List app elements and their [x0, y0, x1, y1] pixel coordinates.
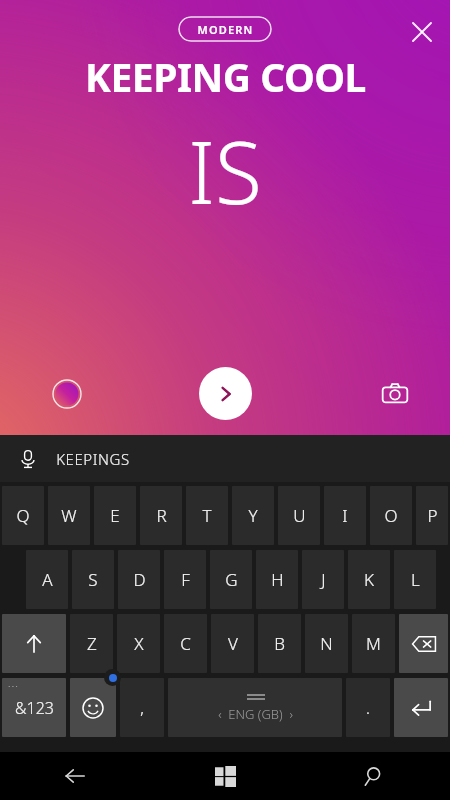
staticText: S: [88, 568, 98, 591]
button[interactable]: R: [140, 486, 182, 545]
button[interactable]: Close: [402, 12, 442, 52]
button[interactable]: Y: [232, 486, 274, 545]
staticText: H: [271, 568, 284, 591]
button[interactable]: Camera: [373, 372, 417, 416]
staticText: KEEPINGS: [56, 449, 130, 469]
button[interactable]: L: [394, 550, 436, 609]
button[interactable]: J: [302, 550, 344, 609]
button[interactable]: K: [348, 550, 390, 609]
staticText: · · ·: [8, 682, 18, 692]
staticText: U: [293, 504, 306, 527]
button[interactable]: MODERN: [178, 16, 272, 42]
staticText: G: [225, 568, 238, 591]
staticText: Z: [87, 632, 97, 655]
button[interactable]: ‹ ENG (GB) ›: [168, 678, 342, 737]
staticText: V: [228, 632, 238, 655]
staticText: B: [274, 632, 285, 655]
button[interactable]: Colour: [45, 372, 89, 416]
button[interactable]: N: [305, 614, 348, 673]
staticText: I: [342, 504, 348, 527]
button[interactable]: G: [210, 550, 252, 609]
button[interactable]: &123: [2, 678, 66, 737]
staticText: Q: [16, 504, 30, 527]
staticText: IS: [188, 112, 262, 229]
staticText: .: [366, 697, 370, 719]
button[interactable]: [70, 678, 116, 737]
button[interactable]: P: [416, 486, 448, 545]
staticText: K: [364, 568, 374, 591]
button[interactable]: [399, 614, 448, 673]
button[interactable]: H: [256, 550, 298, 609]
staticText: E: [110, 504, 120, 527]
staticText: Y: [248, 504, 258, 527]
staticText: ‹ ENG (GB) ›: [218, 705, 293, 723]
button[interactable]: F: [164, 550, 206, 609]
button[interactable]: O: [370, 486, 412, 545]
button[interactable]: Z: [70, 614, 113, 673]
button[interactable]: Start: [150, 752, 300, 800]
button[interactable]: Search: [300, 752, 450, 800]
staticText: P: [427, 504, 438, 527]
staticText: T: [202, 504, 212, 527]
staticText: ,: [140, 697, 144, 719]
button[interactable]: M: [352, 614, 395, 673]
button[interactable]: KEEPINGS: [56, 435, 130, 482]
button[interactable]: U: [278, 486, 320, 545]
button[interactable]: X: [117, 614, 160, 673]
staticText: X: [134, 632, 144, 655]
button[interactable]: Back: [0, 752, 150, 800]
button[interactable]: Q: [2, 486, 44, 545]
button[interactable]: D: [118, 550, 160, 609]
button[interactable]: T: [186, 486, 228, 545]
button[interactable]: B: [258, 614, 301, 673]
button[interactable]: A: [26, 550, 68, 609]
staticText: D: [133, 568, 146, 591]
button[interactable]: E: [94, 486, 136, 545]
staticText: A: [42, 568, 53, 591]
staticText: M: [366, 632, 381, 655]
button[interactable]: V: [211, 614, 254, 673]
button[interactable]: I: [324, 486, 366, 545]
button[interactable]: Voice input: [0, 435, 56, 482]
staticText: C: [180, 632, 191, 655]
staticText: N: [320, 632, 333, 655]
button[interactable]: [2, 614, 66, 673]
staticText: O: [384, 504, 398, 527]
button[interactable]: W: [48, 486, 90, 545]
staticText: J: [321, 568, 326, 591]
staticText: L: [411, 568, 420, 591]
button[interactable]: Next: [199, 367, 252, 420]
staticText: W: [61, 504, 77, 527]
staticText: R: [156, 504, 167, 527]
staticText: &123: [15, 697, 54, 719]
staticText: KEEPING COOL: [85, 50, 366, 103]
button[interactable]: [394, 678, 448, 737]
button[interactable]: C: [164, 614, 207, 673]
staticText: MODERN: [197, 22, 254, 37]
button[interactable]: S: [72, 550, 114, 609]
button[interactable]: .: [346, 678, 390, 737]
staticText: F: [181, 568, 190, 591]
button[interactable]: ,: [120, 678, 164, 737]
